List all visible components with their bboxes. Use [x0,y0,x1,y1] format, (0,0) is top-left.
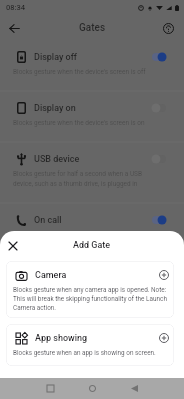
button[interactable]: Add App showing [156,330,172,346]
staticText: Add Gate [73,240,111,251]
button[interactable]: Help [157,17,179,39]
button[interactable]: Back [3,17,25,39]
button[interactable]: Toggle on [147,213,171,227]
button[interactable]: Home [75,378,109,399]
button[interactable]: App showing [6,324,174,366]
button[interactable]: On call [0,204,184,244]
button[interactable]: Close [4,237,22,255]
button[interactable]: Back [117,378,151,399]
button[interactable]: Toggle off [147,101,171,115]
staticText: Display off [34,52,78,63]
button[interactable]: Add Camera [156,267,172,283]
button[interactable]: Camera [6,261,174,318]
button[interactable]: Toggle on [147,50,171,64]
staticText: Camera [35,270,67,281]
staticText: 08:34 [6,3,26,12]
staticText: Blocks gesture when the device's screen … [13,68,146,76]
button[interactable]: Toggle off [147,152,171,166]
staticText: Blocks gesture when the device's screen … [13,119,145,127]
staticText: Blocks gesture when any camera app is op… [13,286,169,312]
staticText: Blocks gesture for half a second when a … [13,170,161,187]
staticText: On call [34,215,62,226]
staticText: Blocks gesture when an app is showing on… [13,349,156,357]
button[interactable]: Display off [0,41,184,92]
button[interactable]: USB device [0,143,184,204]
staticText: Display on [34,103,76,114]
button[interactable]: Display on [0,92,184,143]
staticText: USB device [34,154,80,165]
staticText: App showing [35,333,88,344]
button[interactable]: Recents [33,378,67,399]
staticText: Gates [79,22,106,34]
